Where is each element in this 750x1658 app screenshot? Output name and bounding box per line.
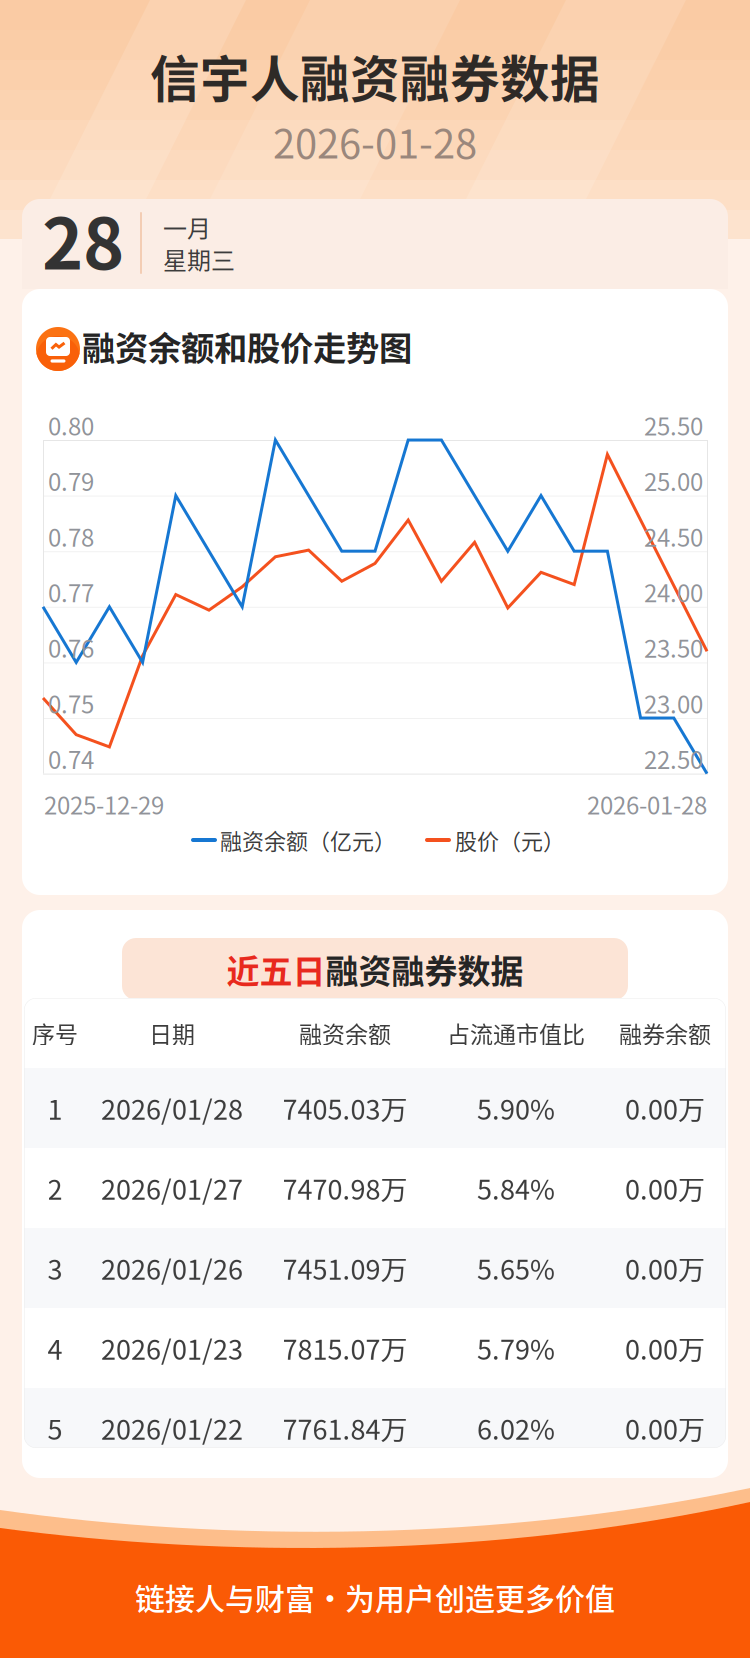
- staticText: 2026/01/27: [101, 1168, 243, 1208]
- staticText: 序号: [32, 1016, 78, 1050]
- staticText: 信宇人融资融券数据: [150, 40, 600, 112]
- staticText: 融资余额（亿元）: [220, 824, 396, 856]
- staticText: 24.00: [644, 574, 703, 609]
- staticText: 25.00: [644, 463, 703, 498]
- staticText: 近五日: [226, 945, 325, 993]
- staticText: 5.84%: [477, 1168, 555, 1208]
- staticText: 股价（元）: [455, 824, 565, 856]
- staticText: 0.00万: [625, 1408, 705, 1448]
- staticText: 2026/01/22: [101, 1408, 243, 1448]
- staticText: 2025-12-29: [44, 787, 164, 821]
- staticText: 7451.09万: [282, 1248, 407, 1288]
- staticText: 链接人与财富·为用户创造更多价值: [135, 1575, 615, 1619]
- staticText: 0.00万: [625, 1168, 705, 1208]
- staticText: 融资余额和股价走势图: [82, 322, 412, 370]
- staticText: 0.77: [48, 574, 94, 609]
- staticText: 25.50: [644, 408, 703, 442]
- staticText: 2026/01/23: [101, 1328, 243, 1368]
- staticText: 2026/01/28: [101, 1088, 243, 1128]
- staticText: 23.00: [644, 686, 703, 720]
- staticText: 融资融券数据: [325, 945, 523, 993]
- staticText: 占流通市值比: [447, 1016, 585, 1050]
- staticText: 2: [47, 1168, 62, 1208]
- staticText: 2026-01-28: [587, 787, 707, 821]
- staticText: 5: [47, 1408, 62, 1448]
- staticText: 23.50: [644, 630, 703, 665]
- staticText: 4: [47, 1328, 62, 1368]
- staticText: 7815.07万: [282, 1328, 407, 1368]
- staticText: 5.90%: [477, 1088, 555, 1128]
- staticText: 5.65%: [477, 1248, 555, 1288]
- staticText: 2026/01/26: [101, 1248, 243, 1288]
- staticText: 0.00万: [625, 1248, 705, 1288]
- staticText: 6.02%: [477, 1408, 555, 1448]
- staticText: 0.79: [48, 463, 94, 498]
- staticText: 日期: [149, 1016, 195, 1050]
- staticText: 7761.84万: [282, 1408, 407, 1448]
- staticText: 0.78: [48, 519, 94, 554]
- staticText: 28: [42, 188, 124, 290]
- staticText: 星期三: [163, 242, 235, 276]
- staticText: 7470.98万: [282, 1168, 407, 1208]
- staticText: 2026-01-28: [273, 112, 477, 170]
- staticText: 22.50: [644, 741, 703, 776]
- staticText: 0.75: [48, 686, 94, 720]
- staticText: 0.74: [48, 741, 94, 776]
- staticText: 7405.03万: [282, 1088, 407, 1128]
- staticText: 0.00万: [625, 1088, 705, 1128]
- staticText: 融资余额: [299, 1016, 391, 1050]
- staticText: 5.79%: [477, 1328, 555, 1368]
- staticText: 一月: [163, 210, 211, 244]
- staticText: 3: [47, 1248, 62, 1288]
- staticText: 24.50: [644, 519, 703, 554]
- staticText: 0.00万: [625, 1328, 705, 1368]
- staticText: 融券余额: [619, 1016, 711, 1050]
- staticText: 1: [47, 1088, 62, 1128]
- staticText: 0.80: [48, 408, 94, 442]
- staticText: 0.76: [48, 630, 94, 665]
